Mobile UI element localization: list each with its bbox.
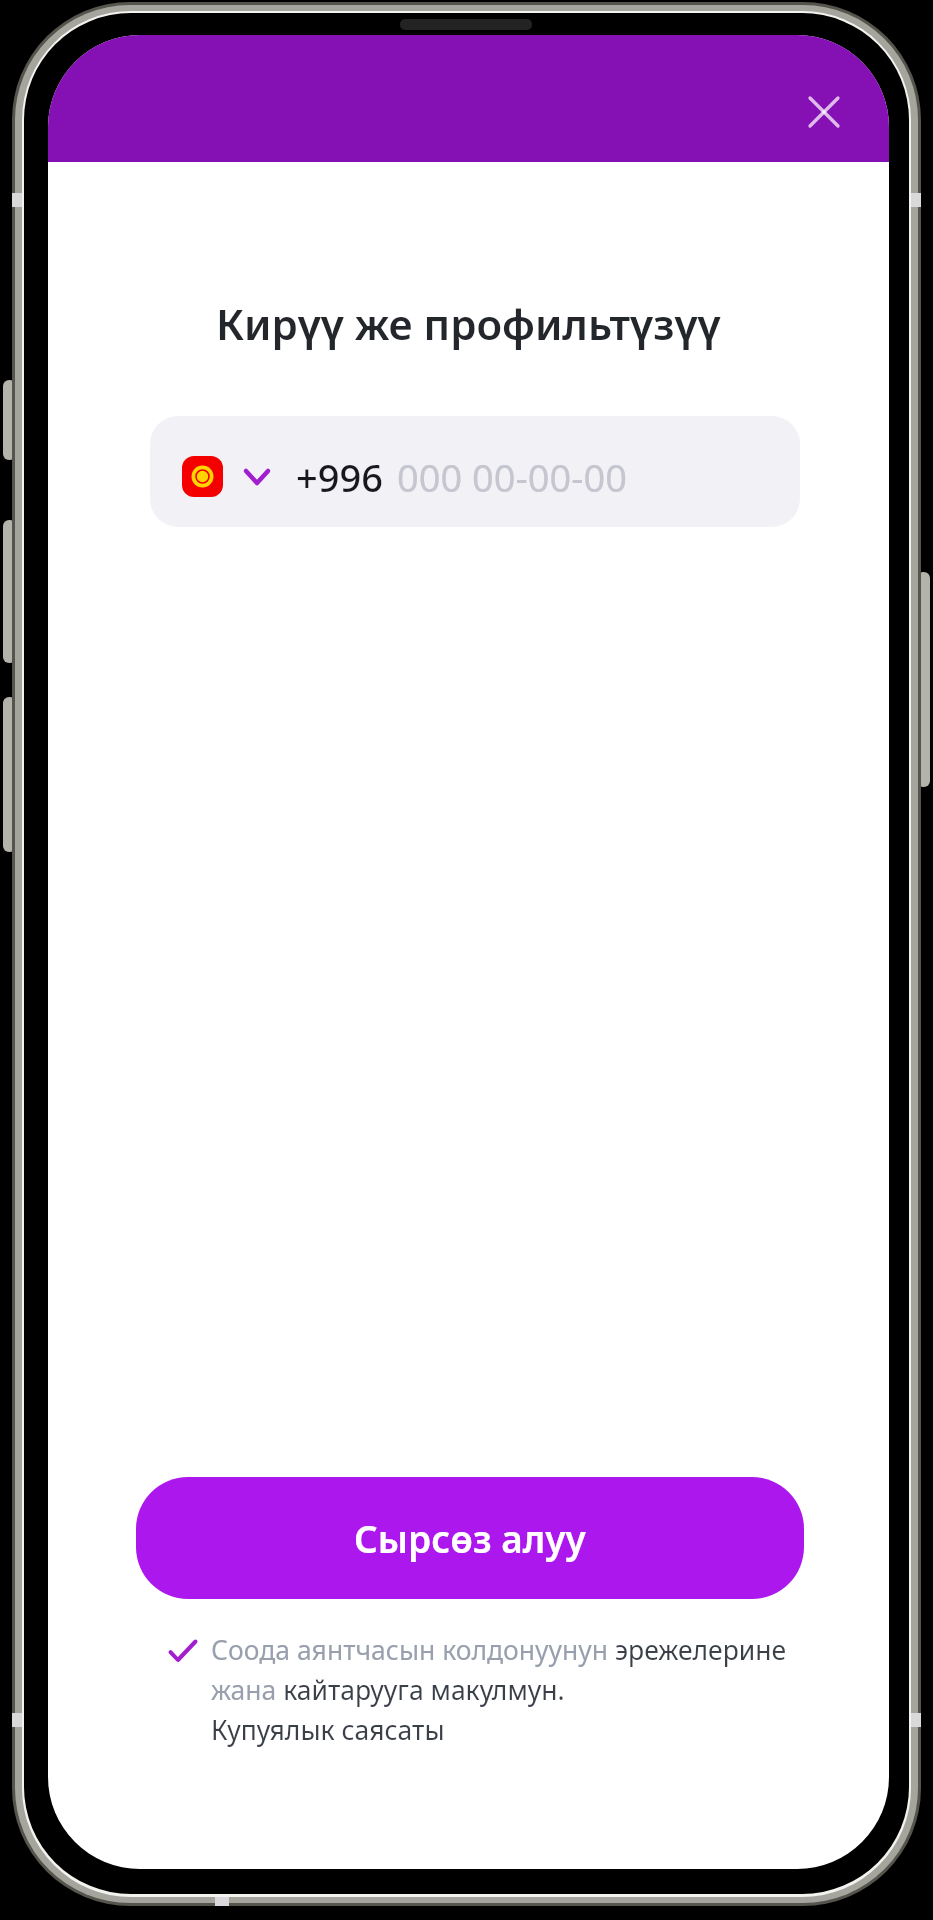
button[interactable]: Сырсөз алуу bbox=[136, 1477, 804, 1599]
staticText: Кирүү же профильтүзүү bbox=[216, 295, 721, 352]
staticText: 000 00-00-00 bbox=[397, 451, 627, 503]
button[interactable] bbox=[161, 1631, 205, 1671]
button[interactable]: +996 bbox=[150, 416, 800, 527]
staticText: +996 bbox=[296, 451, 383, 503]
staticText: Сырсөз алуу bbox=[354, 1513, 586, 1563]
button[interactable] bbox=[794, 82, 854, 142]
staticText: Соода аянтчасын колдонуунун эрежелерине … bbox=[211, 1632, 787, 1748]
button[interactable]: Соода аянтчасын колдонуунун эрежелерине … bbox=[211, 1632, 787, 1748]
